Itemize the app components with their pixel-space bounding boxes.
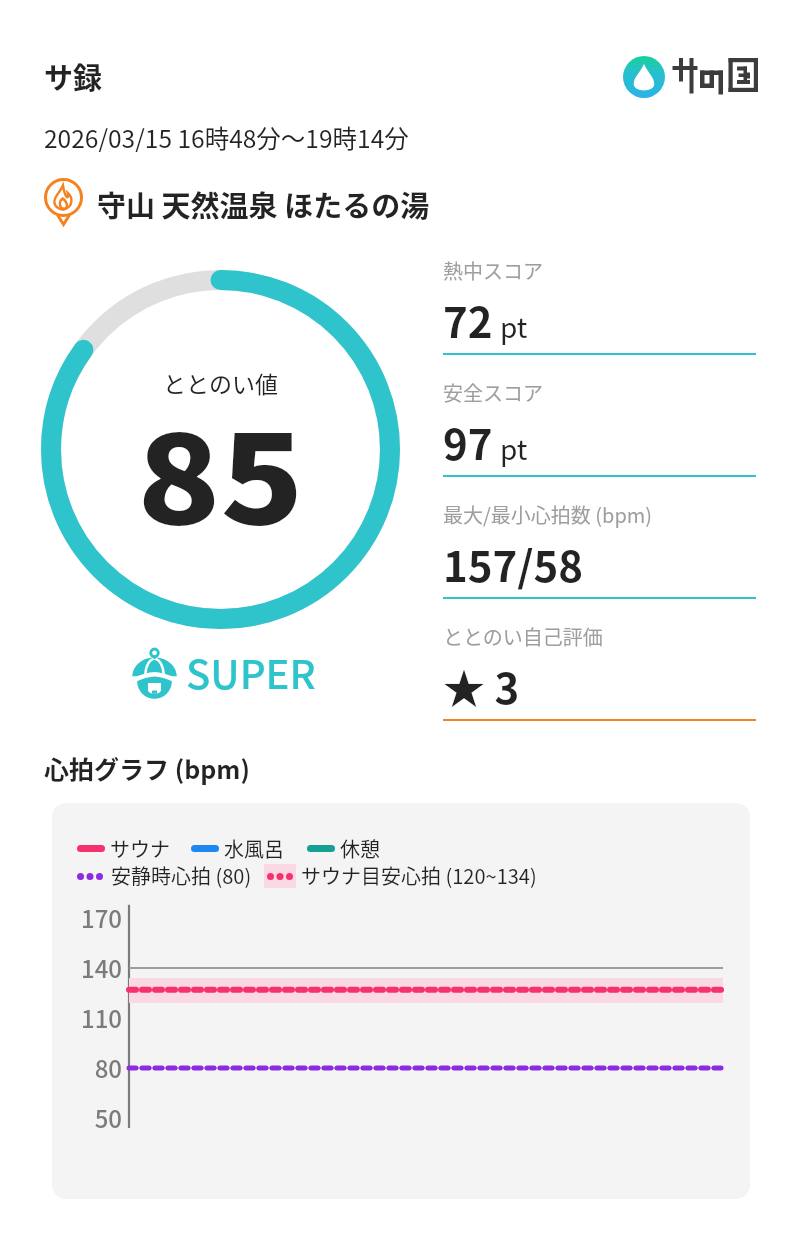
staticText: サウナ xyxy=(110,834,170,863)
staticText: 守山 天然温泉 ほたるの湯 xyxy=(97,183,430,225)
button[interactable]: 熱中スコア xyxy=(443,256,756,366)
staticText: 心拍グラフ (bpm) xyxy=(44,750,250,786)
staticText: 最大/最小心拍数 (bpm) xyxy=(443,500,653,529)
staticText: 安全スコア xyxy=(443,378,543,407)
staticText: 水風呂 xyxy=(224,834,284,863)
staticText: サ録 xyxy=(44,55,103,97)
button[interactable]: 最大/最小心拍数 (bpm) xyxy=(443,500,756,610)
staticText: 85 xyxy=(19,382,422,559)
staticText: pt xyxy=(500,428,528,469)
staticText: 110 xyxy=(52,1000,122,1035)
staticText: 熱中スコア xyxy=(443,256,543,285)
button[interactable]: ととのい自己評価 xyxy=(443,622,756,732)
staticText: pt xyxy=(500,306,528,347)
button[interactable]: サの国 ロゴ xyxy=(623,55,760,99)
staticText: 170 xyxy=(52,900,122,935)
staticText: SUPER xyxy=(186,643,316,701)
staticText: 80 xyxy=(52,1050,122,1085)
other: 場所 xyxy=(44,178,83,230)
staticText: 安静時心拍 (80) xyxy=(111,861,252,890)
staticText: 157/58 xyxy=(443,533,584,594)
staticText: 2026/03/15 16時48分〜19時14分 xyxy=(44,120,409,155)
staticText: 140 xyxy=(52,950,122,985)
staticText: 休憩 xyxy=(340,834,380,863)
staticText: 97 xyxy=(443,411,493,472)
staticText: ★ 3 xyxy=(443,655,520,716)
staticText: 50 xyxy=(52,1100,122,1135)
staticText: サウナ目安心拍 (120~134) xyxy=(301,861,537,890)
staticText: ととのい自己評価 xyxy=(443,622,603,651)
staticText: ととのい値 xyxy=(41,366,400,399)
button[interactable]: サ録 xyxy=(44,55,103,97)
button[interactable]: 安全スコア xyxy=(443,378,756,488)
staticText: 72 xyxy=(443,289,493,350)
